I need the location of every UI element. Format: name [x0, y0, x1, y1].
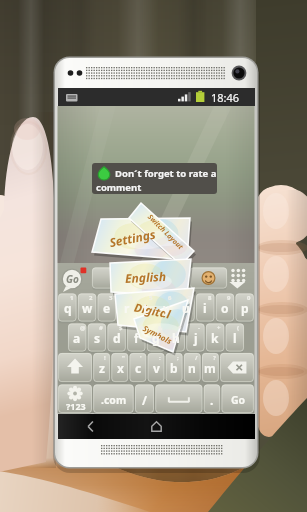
button[interactable]: Home: [123, 414, 189, 439]
staticText: 18:46: [211, 90, 240, 105]
button[interactable]: Emoji: [190, 268, 227, 289]
button[interactable]: Backspace: [219, 353, 254, 382]
button[interactable]: k: [205, 324, 225, 352]
button[interactable]: u: [176, 294, 196, 322]
staticText: w: [82, 300, 93, 316]
staticText: :: [159, 354, 161, 362]
button[interactable]: Don´t forget to rate and: [92, 163, 217, 194]
button[interactable]: Go: [221, 385, 255, 414]
staticText: 8: [208, 294, 212, 302]
staticText: ": [122, 354, 125, 362]
staticText: s: [94, 330, 101, 346]
button[interactable]: p: [235, 294, 255, 322]
button[interactable]: r: [117, 294, 137, 322]
button[interactable]: Switch input language: [92, 268, 154, 289]
button[interactable]: n: [183, 353, 201, 382]
staticText: h: [172, 330, 180, 346]
button[interactable]: /: [134, 385, 154, 414]
staticText: 7: [188, 294, 192, 302]
button[interactable]: Space: [155, 385, 203, 414]
button[interactable]: .: [203, 385, 221, 414]
staticText: j: [194, 330, 198, 346]
staticText: Switch Layout: [145, 212, 185, 252]
button[interactable]: GO Keyboard: [62, 269, 82, 289]
staticText: !: [104, 354, 106, 362]
staticText: Symbols: [141, 322, 174, 347]
button[interactable]: Back: [58, 414, 123, 439]
staticText: x: [117, 360, 124, 376]
staticText: 4: [129, 294, 133, 302]
button[interactable]: x: [111, 353, 129, 382]
staticText: &: [158, 324, 163, 332]
staticText: ?123: [66, 400, 86, 412]
button[interactable]: i: [195, 294, 215, 322]
staticText: English: [125, 268, 167, 286]
button[interactable]: Digital: [111, 294, 193, 328]
staticText: Go: [231, 393, 246, 407]
staticText: r: [124, 300, 130, 316]
button[interactable]: b: [165, 353, 183, 382]
staticText: +: [217, 324, 221, 332]
button[interactable]: f: [126, 324, 146, 352]
staticText: g: [152, 330, 160, 346]
button[interactable]: g: [146, 324, 166, 352]
button[interactable]: Symbols: [118, 308, 198, 360]
staticText: t: [143, 300, 149, 316]
staticText: m: [204, 360, 216, 376]
button[interactable]: y: [156, 294, 176, 322]
button[interactable]: s: [87, 324, 107, 352]
button[interactable]: English: [106, 266, 186, 288]
button[interactable]: h: [166, 324, 186, 352]
button[interactable]: q: [58, 294, 78, 322]
staticText: ?: [213, 354, 216, 362]
staticText: (: [237, 324, 240, 332]
staticText: f: [134, 330, 139, 346]
staticText: i: [203, 300, 207, 316]
button[interactable]: t: [136, 294, 156, 322]
button[interactable]: o: [215, 294, 235, 322]
button[interactable]: a: [67, 324, 87, 352]
staticText: *: [178, 324, 182, 332]
staticText: Go: [66, 272, 79, 286]
staticText: comment: [96, 181, 142, 194]
staticText: a: [73, 330, 81, 346]
button[interactable]: Settings: [91, 221, 173, 254]
staticText: k: [211, 330, 219, 346]
button[interactable]: d: [107, 324, 127, 352]
button[interactable]: c: [129, 353, 147, 382]
staticText: 1: [70, 294, 74, 302]
staticText: ;: [177, 354, 179, 362]
staticText: 3: [109, 294, 113, 302]
staticText: q: [64, 300, 72, 316]
button[interactable]: w: [77, 294, 97, 322]
button[interactable]: j: [186, 324, 206, 352]
staticText: $: [119, 324, 123, 332]
staticText: %: [139, 324, 145, 332]
staticText: 9: [227, 294, 231, 302]
staticText: /: [142, 392, 147, 408]
staticText: /: [195, 354, 198, 362]
button[interactable]: v: [147, 353, 165, 382]
button[interactable]: e: [97, 294, 117, 322]
staticText: #: [99, 324, 103, 332]
staticText: d: [113, 330, 121, 346]
staticText: o: [221, 300, 229, 316]
button[interactable]: .com: [93, 385, 135, 414]
button[interactable]: Keyboard layouts: [226, 265, 254, 291]
staticText: -: [198, 324, 200, 332]
staticText: p: [241, 300, 249, 316]
button[interactable]: z: [93, 353, 111, 382]
staticText: .com: [101, 393, 127, 407]
staticText: b: [170, 360, 178, 376]
staticText: ': [140, 354, 142, 362]
staticText: Digital: [133, 299, 172, 323]
staticText: Settings: [108, 226, 157, 250]
button[interactable]: m: [201, 353, 219, 382]
button[interactable]: l: [225, 324, 245, 352]
staticText: 6: [168, 294, 172, 302]
button[interactable]: Switch Layout: [130, 197, 200, 267]
staticText: 2: [89, 294, 93, 302]
button[interactable]: Symbols and numbers: [58, 385, 93, 414]
staticText: @: [80, 324, 86, 332]
button[interactable]: Shift: [58, 353, 93, 382]
